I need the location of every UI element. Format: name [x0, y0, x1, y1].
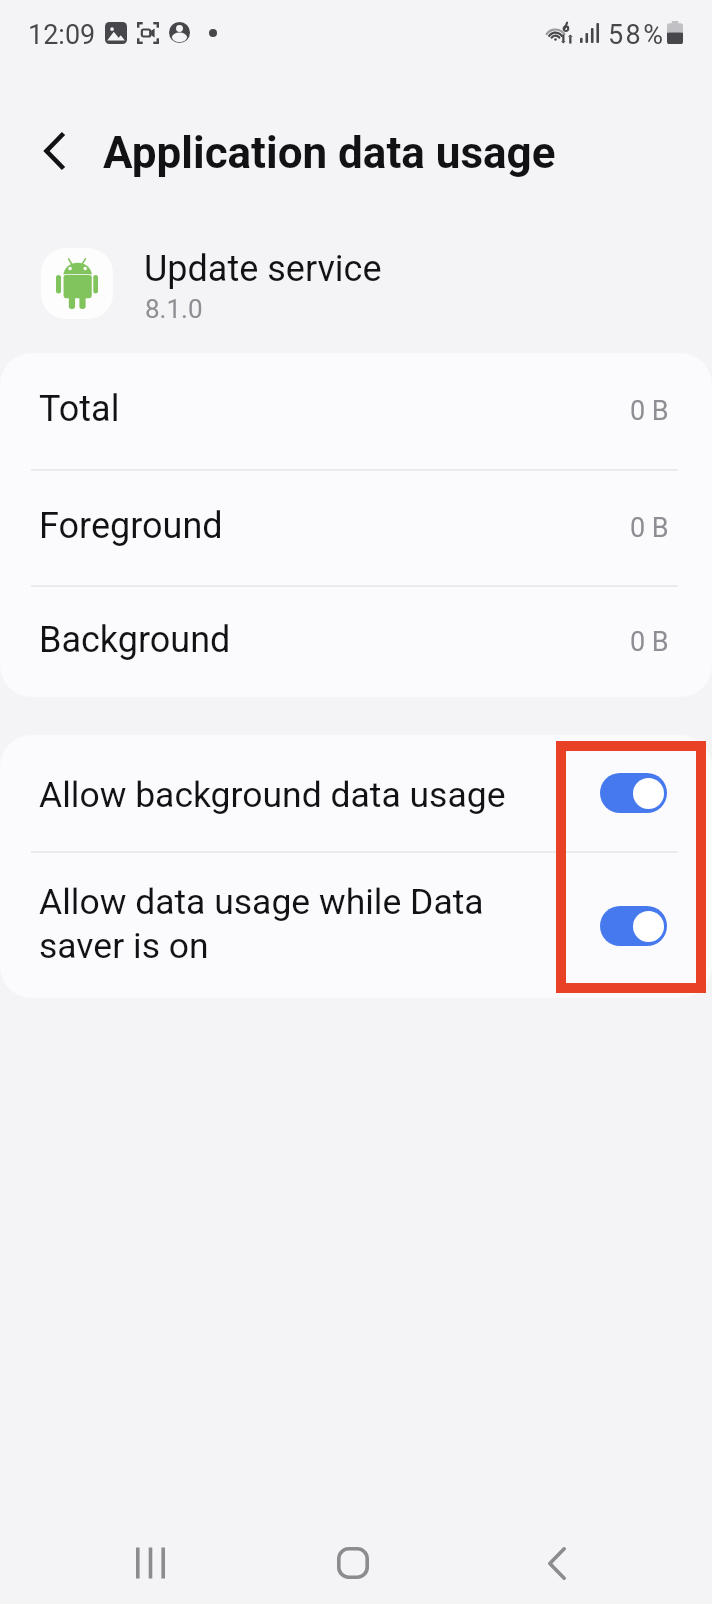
staticText: 12:09	[28, 19, 96, 51]
button[interactable]: Navigate up	[24, 120, 86, 182]
staticText: Background	[39, 619, 231, 661]
staticText: 8.1.0	[145, 294, 203, 324]
button[interactable]: Home	[299, 1509, 407, 1604]
staticText: Allow background data usage	[39, 774, 506, 816]
staticText: 0 B	[630, 395, 669, 427]
button[interactable]: Toggle	[600, 906, 667, 946]
staticText: 0 B	[630, 626, 669, 658]
staticText: 58%	[608, 19, 666, 51]
button[interactable]: Allow background data usage	[0, 735, 712, 851]
staticText: 0 B	[630, 512, 669, 544]
button[interactable]: Toggle	[600, 773, 667, 813]
button[interactable]: Allow data usage while Data saver is on	[0, 853, 712, 998]
button[interactable]: Total	[0, 353, 712, 469]
staticText: Application data usage	[103, 127, 556, 179]
button[interactable]: Background	[0, 587, 712, 697]
button[interactable]: Back	[503, 1509, 611, 1604]
staticText: Update service	[144, 248, 382, 290]
staticText: Allow data usage while Data saver is on	[39, 881, 484, 967]
staticText: Foreground	[39, 505, 223, 547]
button[interactable]: Foreground	[0, 471, 712, 585]
staticText: Total	[39, 388, 120, 430]
button[interactable]: Recents	[96, 1509, 204, 1604]
